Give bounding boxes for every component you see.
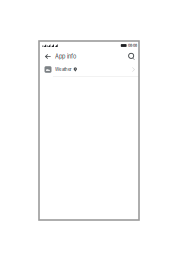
staticText: App info: [55, 53, 76, 60]
button[interactable]: Back: [42, 50, 53, 63]
button[interactable]: Search: [126, 50, 138, 63]
staticText: 08:08: [128, 43, 137, 48]
staticText: Weather: [55, 67, 72, 72]
button[interactable]: Weather: [39, 63, 139, 77]
